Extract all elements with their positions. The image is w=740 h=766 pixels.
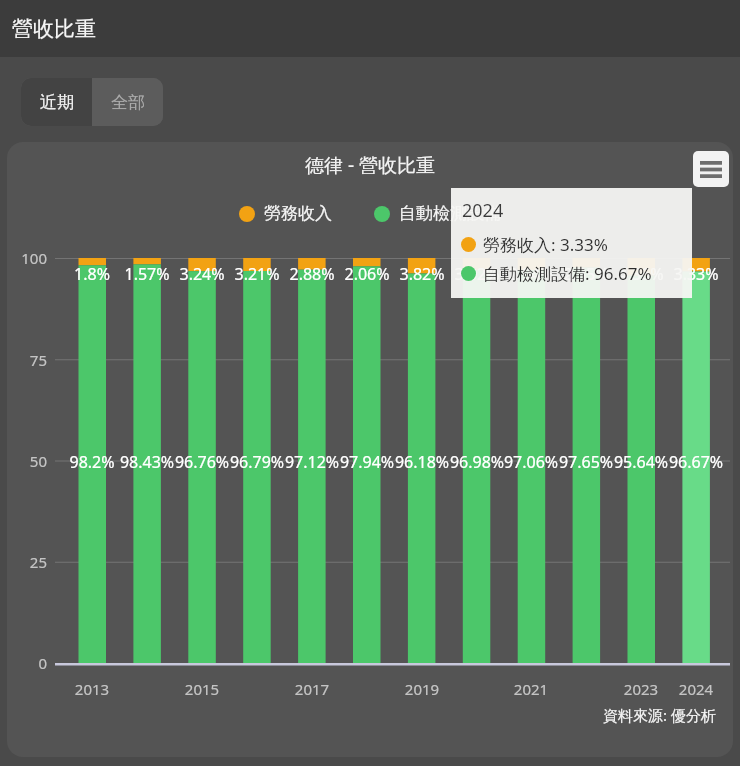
staticText: 1.57%	[112, 263, 182, 285]
staticText: 勞務收入: 3.33%	[483, 233, 608, 256]
staticText: 2.35%	[551, 263, 621, 285]
staticText: 95.64%	[601, 451, 681, 473]
staticText: 3.33%	[661, 263, 731, 285]
staticText: 2017	[282, 679, 342, 699]
button[interactable]: 勞務收入	[239, 203, 332, 224]
staticText: 3.82%	[387, 263, 457, 285]
staticText: 97.94%	[327, 451, 407, 473]
staticText: 4.36%	[606, 263, 676, 285]
button[interactable]: 近期	[21, 78, 92, 126]
staticText: 2.88%	[277, 263, 347, 285]
staticText: 3.21%	[222, 263, 292, 285]
button[interactable]: Chart menu	[693, 151, 729, 187]
staticText: 資料來源: 優分析	[603, 705, 716, 725]
staticText: 96.76%	[162, 451, 242, 473]
staticText: 0	[7, 653, 47, 673]
staticText: 96.18%	[382, 451, 462, 473]
staticText: 2021	[501, 679, 561, 699]
staticText: 營收比重	[12, 16, 96, 42]
staticText: 3.24%	[167, 263, 237, 285]
staticText: 2015	[172, 679, 232, 699]
staticText: 98.43%	[107, 451, 187, 473]
staticText: 25	[7, 552, 47, 572]
staticText: 96.98%	[437, 451, 517, 473]
staticText: 96.67%	[656, 451, 733, 473]
staticText: 97.65%	[546, 451, 626, 473]
staticText: 2023	[611, 679, 671, 699]
staticText: 75	[7, 350, 47, 370]
staticText: 近期	[40, 92, 74, 113]
button[interactable]: 全部	[92, 78, 163, 126]
staticText: 96.79%	[217, 451, 297, 473]
button[interactable]: 自動檢測設備	[374, 203, 501, 224]
staticText: 2.06%	[332, 263, 402, 285]
staticText: 2013	[62, 679, 122, 699]
staticText: 100	[7, 248, 47, 268]
staticText: 全部	[111, 92, 145, 113]
staticText: 1.8%	[57, 263, 127, 285]
staticText: 50	[7, 451, 47, 471]
staticText: 勞務收入	[264, 203, 332, 224]
staticText: 97.06%	[491, 451, 571, 473]
staticText: 2.94%	[496, 263, 566, 285]
staticText: 自動檢測設備	[399, 203, 501, 224]
staticText: 97.12%	[272, 451, 352, 473]
staticText: 3.02%	[442, 263, 512, 285]
staticText: 德律 - 營收比重	[7, 152, 733, 178]
staticText: 98.2%	[52, 451, 132, 473]
staticText: 2024	[666, 679, 726, 699]
staticText: 自動檢測設備: 96.67%	[483, 262, 652, 285]
staticText: 2024	[462, 198, 504, 223]
staticText: 2019	[392, 679, 452, 699]
